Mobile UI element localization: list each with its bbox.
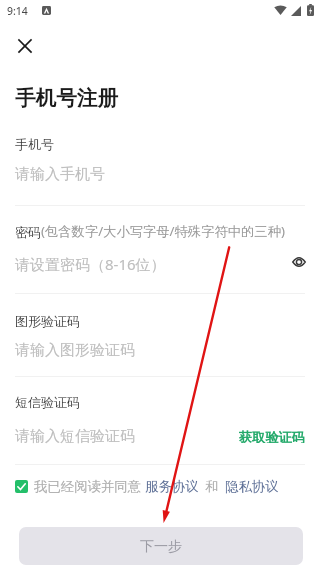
staticText: 请输入图形验证码 [15,341,135,360]
button[interactable]: 隐私协议 [225,478,279,494]
button[interactable]: 请输入手机号 [15,163,305,185]
staticText: 手机号注册 [15,85,118,111]
staticText: 密码 [15,224,41,240]
button[interactable]: 请输入图形验证码 [15,339,305,361]
staticText: (包含数字/大小写字母/特殊字符中的三种) [41,222,285,240]
button[interactable]: 服务协议 [145,478,199,494]
button[interactable]: Agree to terms [15,480,28,493]
button[interactable]: Close [11,32,39,60]
button[interactable]: 下一步 [19,527,303,565]
staticText: 图形验证码 [15,313,80,329]
staticText: 手机号 [15,136,54,152]
staticText: 下一步 [140,538,182,556]
staticText: 9:14 [7,4,28,18]
staticText: 我已经阅读并同意 [34,478,142,494]
button[interactable]: 请输入短信验证码 [15,425,239,447]
staticText: 请输入手机号 [15,165,105,184]
button[interactable]: 获取验证码 [239,425,305,447]
staticText: 请输入短信验证码 [15,427,135,446]
staticText: 短信验证码 [15,394,80,410]
staticText: 请设置密码（8-16位） [15,254,166,274]
staticText: 和 [205,478,219,494]
staticText: 获取验证码 [239,429,305,443]
button[interactable]: 请设置密码（8-16位） [15,253,283,275]
button[interactable]: Toggle password visibility [283,253,305,275]
